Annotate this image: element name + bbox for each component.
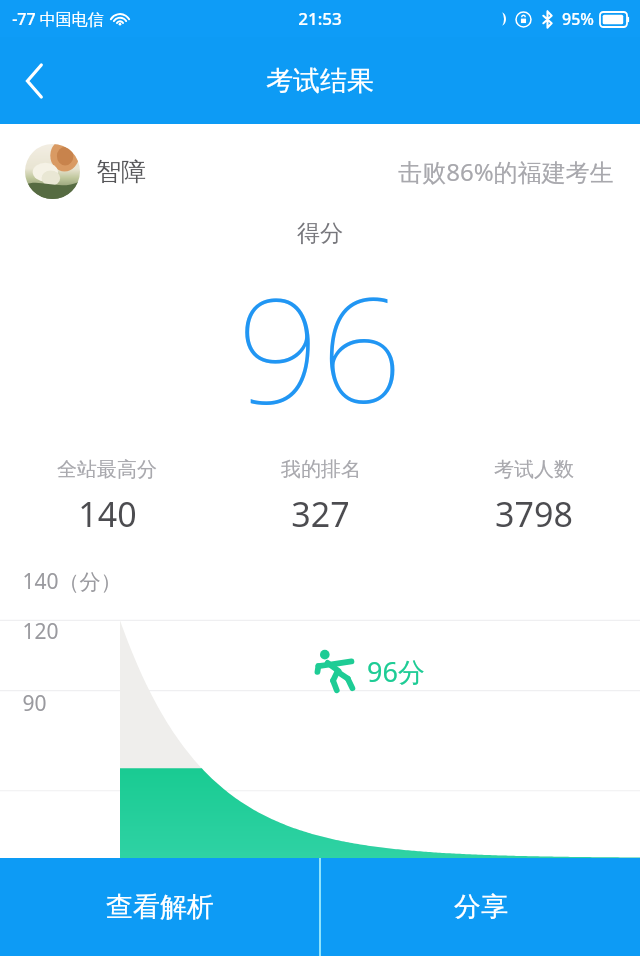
staticText: 21:53: [298, 7, 342, 30]
button[interactable]: 全站最高分: [0, 457, 214, 537]
staticText: 得分: [297, 219, 343, 248]
staticText: 查看解析: [106, 890, 214, 924]
staticText: 140: [78, 491, 137, 537]
button[interactable]: Back: [0, 46, 70, 116]
staticText: 击败86%的福建考生: [398, 155, 614, 188]
button[interactable]: 考试人数: [427, 457, 640, 537]
staticText: 3798: [495, 491, 573, 537]
button[interactable]: 查看解析: [0, 858, 319, 956]
staticText: 全站最高分: [57, 457, 157, 482]
staticText: 90: [22, 689, 47, 718]
staticText: 95%: [562, 8, 594, 30]
staticText: 96分: [367, 653, 425, 690]
staticText: 分享: [454, 890, 508, 924]
staticText: 考试人数: [494, 457, 574, 482]
staticText: 140（分）: [22, 567, 122, 596]
staticText: -77 中国电信: [12, 8, 104, 30]
staticText: 327: [291, 491, 350, 537]
button[interactable]: 我的排名: [214, 457, 427, 537]
button[interactable]: 分享: [321, 858, 640, 956]
other: Your score marker: [311, 647, 357, 695]
staticText: 120: [22, 617, 59, 646]
button[interactable]: 智障: [0, 124, 640, 219]
staticText: 我的排名: [281, 457, 361, 482]
staticText: 考试结果: [266, 64, 374, 98]
staticText: 智障: [96, 156, 146, 187]
staticText: 96: [237, 248, 403, 445]
